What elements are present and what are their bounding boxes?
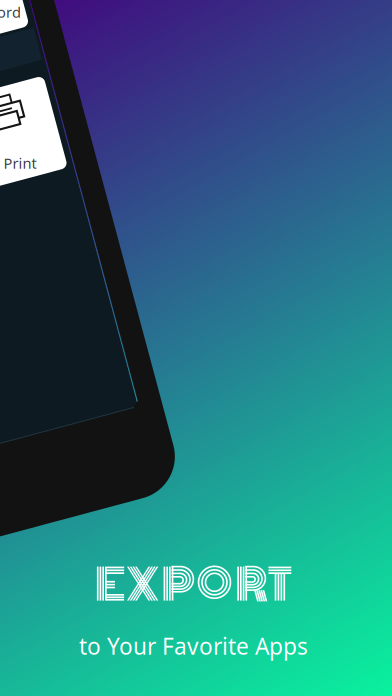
staticText: ord bbox=[0, 2, 21, 22]
staticText: Print bbox=[3, 153, 36, 173]
staticText: to Your Favorite Apps bbox=[79, 631, 308, 661]
